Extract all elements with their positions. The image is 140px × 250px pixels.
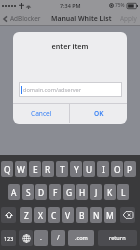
staticText: H [79,187,86,198]
button[interactable]: Backspace [120,207,135,223]
button[interactable]: P [124,161,136,177]
staticText: AdBlocker [10,14,41,23]
button[interactable]: M [104,207,116,223]
staticText: W [17,164,25,175]
button[interactable]: I [97,161,109,177]
staticText: I [102,164,105,175]
button[interactable]: J [90,184,102,200]
button[interactable]: Switch keyboard [19,230,33,246]
staticText: V [65,210,71,221]
button[interactable]: O [111,161,123,177]
staticText: 123 [4,235,14,242]
staticText: 75% [115,2,125,9]
button[interactable]: AdBlocker [3,14,41,23]
button[interactable]: D [35,184,47,200]
button[interactable]: / [51,230,65,246]
staticText: .com [75,234,88,242]
staticText: K [107,187,113,198]
button[interactable]: OK [70,103,127,123]
button[interactable]: W [15,161,27,177]
button[interactable]: R [42,161,54,177]
staticText: OK [94,109,104,118]
staticText: L [121,187,126,198]
button[interactable]: U [83,161,95,177]
staticText: J [95,187,98,198]
button[interactable]: A [8,184,20,200]
staticText: T [60,164,65,175]
button[interactable]: return [98,230,137,246]
button[interactable]: domain.com/adserver [20,83,121,96]
button[interactable]: . [34,230,48,246]
staticText: E [33,164,38,175]
staticText: O [114,164,121,175]
button[interactable]: 123 [1,230,16,246]
button[interactable]: G [63,184,75,200]
staticText: P [127,164,133,175]
button[interactable]: V [62,207,74,223]
button[interactable]: Cancel [13,103,69,123]
staticText: domain.com/adserver [23,86,82,94]
button[interactable]: S [22,184,34,200]
button[interactable]: L [117,184,129,200]
staticText: Q [4,164,11,175]
staticText: Y [74,164,79,175]
staticText: U [86,164,93,175]
button[interactable]: B [76,207,88,223]
staticText: A [11,187,17,198]
staticText: G [66,187,73,198]
staticText: return [109,234,126,242]
button[interactable]: X [34,207,46,223]
staticText: 7:34 PM [60,2,81,9]
staticText: N [93,210,100,221]
staticText: R [45,164,51,175]
button[interactable]: C [48,207,60,223]
button[interactable]: Z [20,207,32,223]
button[interactable]: Shift [1,207,16,223]
button[interactable]: E [29,161,41,177]
button[interactable]: F [49,184,61,200]
staticText: Manual White List [51,14,112,23]
staticText: Z [24,210,29,221]
button[interactable]: Y [70,161,82,177]
staticText: D [38,187,45,198]
staticText: F [53,187,58,198]
staticText: C [51,210,57,221]
staticText: Cancel [31,109,52,118]
staticText: X [38,210,43,221]
staticText: / [57,233,60,243]
button[interactable]: K [104,184,116,200]
staticText: M [106,210,114,221]
button[interactable]: .com [68,230,94,246]
staticText: B [79,210,85,221]
button[interactable]: N [90,207,102,223]
button[interactable]: Apply [120,14,137,23]
staticText: . [40,233,42,243]
button[interactable]: Q [1,161,13,177]
button[interactable]: H [76,184,88,200]
staticText: enter item [13,41,127,51]
staticText: S [26,187,31,198]
button[interactable]: T [56,161,68,177]
